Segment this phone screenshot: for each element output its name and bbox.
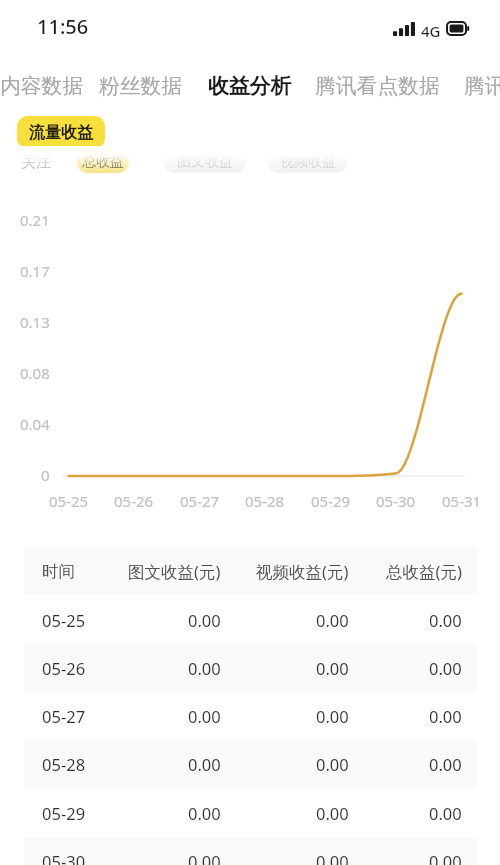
staticText: 0.00 [316, 753, 349, 775]
staticText: 0.00 [188, 850, 221, 865]
staticText: 0.00 [429, 850, 462, 865]
staticText: 0.17 [20, 261, 50, 281]
staticText: 0.00 [188, 705, 221, 727]
staticText: 05-26 [114, 491, 154, 511]
staticText: 0.00 [316, 705, 349, 727]
staticText: 05-29 [311, 491, 351, 511]
staticText: 0.00 [429, 705, 462, 727]
staticText: 0.00 [316, 609, 349, 631]
staticText: 05-25 [49, 491, 89, 511]
staticText: 0.21 [20, 210, 50, 230]
staticText: 0.08 [20, 363, 50, 383]
staticText: 腾讯看点 [464, 73, 500, 99]
staticText: 05-28 [42, 753, 86, 775]
staticText: 11:56 [37, 13, 89, 40]
staticText: 0.00 [188, 609, 221, 631]
button[interactable]: 图文收益 [164, 151, 246, 173]
staticText: 视频收益 [280, 153, 336, 171]
button[interactable]: 05-30 [24, 837, 477, 865]
staticText: 0.00 [429, 657, 462, 679]
staticText: 图文收益(元) [128, 560, 221, 583]
button[interactable]: 05-28 [24, 740, 477, 788]
staticText: 0.00 [429, 802, 462, 824]
button[interactable]: 内容数据 [0, 66, 96, 106]
other: Cellular signal [393, 22, 415, 36]
button[interactable]: 腾讯看点 [452, 66, 500, 106]
staticText: 0.00 [316, 657, 349, 679]
staticText: 0.13 [20, 312, 50, 332]
staticText: 0.00 [429, 609, 462, 631]
staticText: 粉丝数据 [99, 73, 183, 99]
staticText: 时间 [42, 561, 75, 582]
button[interactable]: 05-29 [24, 788, 477, 837]
staticText: 视频收益(元) [256, 560, 349, 583]
staticText: 0.00 [316, 802, 349, 824]
button[interactable]: 流量收益 [17, 116, 105, 149]
button[interactable]: 收益分析 [196, 66, 304, 106]
staticText: 内容数据 [0, 73, 84, 99]
button[interactable]: 05-25 [24, 595, 477, 644]
staticText: 05-27 [42, 705, 86, 727]
staticText: 总收益(元) [386, 560, 462, 583]
other: Battery [446, 21, 470, 36]
button[interactable]: 总收益 [77, 151, 129, 173]
staticText: 05-26 [42, 657, 86, 679]
button[interactable]: 05-26 [24, 644, 477, 692]
staticText: 关注 [21, 153, 51, 172]
staticText: 05-29 [42, 802, 86, 824]
staticText: 总收益 [82, 153, 124, 171]
staticText: 05-31 [442, 491, 482, 511]
staticText: 05-30 [42, 850, 86, 865]
button[interactable]: 关注 [18, 151, 54, 173]
staticText: 腾讯看点数据 [315, 73, 440, 99]
button[interactable]: 粉丝数据 [87, 66, 195, 106]
staticText: 0.00 [316, 850, 349, 865]
staticText: 4G [421, 21, 441, 41]
staticText: 05-25 [42, 609, 86, 631]
staticText: 图文收益 [177, 153, 233, 171]
staticText: 0.00 [188, 802, 221, 824]
staticText: 0.00 [188, 753, 221, 775]
button[interactable]: 05-27 [24, 692, 477, 740]
button[interactable]: 腾讯看点数据 [303, 66, 452, 106]
staticText: 收益分析 [208, 73, 292, 99]
staticText: 05-30 [376, 491, 416, 511]
button[interactable]: 视频收益 [268, 151, 347, 173]
staticText: 05-27 [180, 491, 220, 511]
staticText: 0.00 [188, 657, 221, 679]
staticText: 0 [41, 465, 50, 485]
staticText: 0.04 [20, 414, 50, 434]
staticText: 流量收益 [29, 123, 93, 143]
staticText: 05-28 [245, 491, 285, 511]
button[interactable]: 时间 [24, 547, 477, 595]
staticText: 0.00 [429, 753, 462, 775]
